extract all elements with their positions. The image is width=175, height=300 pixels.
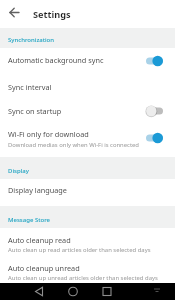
button[interactable]: Display language <box>0 180 140 200</box>
staticText: Message Store <box>8 216 51 224</box>
button[interactable] <box>59 283 117 300</box>
button[interactable]: Wi-Fi only for download <box>0 124 140 144</box>
button[interactable] <box>144 130 168 146</box>
button[interactable]: Auto cleanup unread <box>0 258 140 278</box>
button[interactable] <box>8 6 22 20</box>
staticText: Auto clean up unread articles older than… <box>8 274 158 282</box>
staticText: Download medias only when Wi-Fi is conne… <box>8 141 139 149</box>
staticText: Synchronization <box>8 36 55 44</box>
staticText: Wi-Fi only for download <box>8 129 89 139</box>
staticText: Settings <box>33 8 71 21</box>
staticText: Automatic background sync <box>8 55 104 65</box>
button[interactable] <box>0 283 59 300</box>
staticText: Auto cleanup unread <box>8 263 80 273</box>
staticText: Display <box>8 167 29 175</box>
staticText: Sync on startup <box>8 106 62 116</box>
staticText: Auto cleanup read <box>8 235 71 245</box>
button[interactable]: Sync on startup <box>0 101 140 121</box>
staticText: Display language <box>8 185 67 195</box>
button[interactable]: Auto cleanup read <box>0 230 140 250</box>
button[interactable] <box>117 283 175 300</box>
button[interactable]: Automatic background sync <box>0 50 140 70</box>
staticText: Sync interval <box>8 82 52 92</box>
button[interactable] <box>144 53 168 69</box>
button[interactable]: Sync interval <box>0 77 140 97</box>
button[interactable] <box>144 103 168 119</box>
staticText: Auto clean up read articles older than s… <box>8 246 151 254</box>
